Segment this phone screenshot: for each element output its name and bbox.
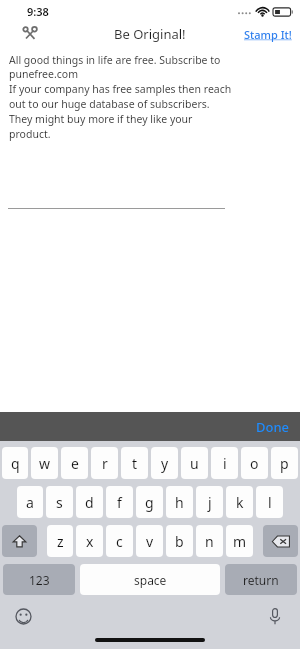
staticText: v	[146, 532, 154, 551]
button[interactable]: d	[76, 486, 103, 518]
staticText: 123	[29, 572, 50, 588]
button[interactable]: l	[256, 486, 283, 518]
staticText: t	[132, 454, 138, 473]
staticText: i	[223, 454, 227, 473]
staticText: e	[71, 454, 79, 473]
staticText: n	[205, 532, 214, 551]
button[interactable]: a	[17, 486, 43, 518]
staticText: p	[280, 454, 289, 473]
staticText: b	[175, 532, 184, 551]
button[interactable]: Stamp It!	[244, 27, 292, 42]
staticText: h	[175, 493, 184, 512]
button[interactable]: w	[31, 447, 58, 479]
staticText: return	[243, 572, 279, 588]
button[interactable]: b	[166, 525, 193, 557]
button[interactable]: Tools	[20, 24, 40, 44]
button[interactable]: j	[196, 486, 223, 518]
button[interactable]: i	[211, 447, 238, 479]
button[interactable]: Done	[256, 418, 290, 436]
staticText: f	[117, 493, 122, 512]
staticText: u	[190, 454, 199, 473]
button[interactable]: y	[151, 447, 178, 479]
button[interactable]: 123	[3, 564, 75, 595]
staticText: c	[116, 532, 123, 551]
staticText: g	[145, 493, 154, 512]
staticText: l	[268, 493, 272, 512]
button[interactable]: e	[61, 447, 88, 479]
button[interactable]: t	[121, 447, 148, 479]
staticText: All good things in life are free. Subscr…	[9, 53, 232, 142]
button[interactable]: c	[106, 525, 133, 557]
button[interactable]: Backspace	[263, 525, 298, 557]
staticText: o	[250, 454, 259, 473]
button[interactable]: x	[76, 525, 103, 557]
staticText: space	[134, 572, 167, 588]
staticText: w	[39, 454, 51, 473]
button[interactable]: space	[80, 564, 220, 595]
staticText: Stamp It!	[244, 27, 292, 42]
button[interactable]: q	[2, 447, 28, 479]
button[interactable]: u	[181, 447, 208, 479]
button[interactable]: v	[136, 525, 163, 557]
staticText: Be Original!	[114, 25, 186, 43]
button[interactable]: z	[47, 525, 73, 557]
staticText: r	[102, 454, 108, 473]
button[interactable]: Emoji	[12, 605, 34, 627]
button[interactable]: h	[166, 486, 193, 518]
staticText: k	[236, 493, 244, 512]
button[interactable]: n	[196, 525, 223, 557]
button[interactable]: o	[241, 447, 268, 479]
button[interactable]: s	[46, 486, 73, 518]
staticText: q	[11, 454, 20, 473]
button[interactable]: f	[106, 486, 133, 518]
button[interactable]: Dictation	[264, 605, 286, 627]
button[interactable]: p	[271, 447, 298, 479]
staticText: s	[56, 493, 63, 512]
staticText: m	[233, 532, 247, 551]
staticText: x	[86, 532, 94, 551]
button[interactable]: g	[136, 486, 163, 518]
staticText: Done	[256, 418, 290, 436]
staticText: d	[85, 493, 94, 512]
button[interactable]: Shift	[2, 525, 37, 557]
staticText: y	[161, 454, 169, 473]
staticText: 9:38	[27, 4, 49, 19]
button[interactable]: return	[225, 564, 297, 595]
staticText: a	[26, 493, 34, 512]
button[interactable]: m	[226, 525, 253, 557]
button[interactable]: r	[91, 447, 118, 479]
staticText: j	[208, 493, 212, 512]
button[interactable]: k	[226, 486, 253, 518]
staticText: z	[57, 532, 64, 551]
